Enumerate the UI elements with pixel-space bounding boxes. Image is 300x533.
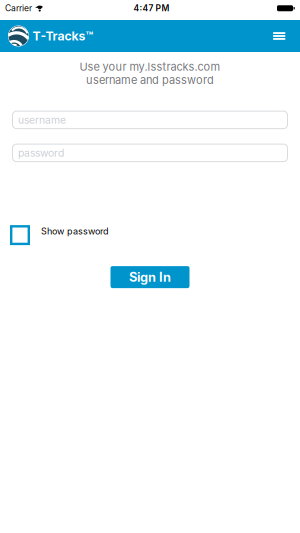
button[interactable]: Show password [10,225,109,245]
button[interactable]: username [12,111,288,129]
staticText: 4:47 PM [133,3,169,13]
staticText: Show password [41,226,109,237]
staticText: T-Tracks™ [32,29,93,43]
button[interactable]: Sign In [110,266,189,288]
staticText: Sign In [129,269,171,285]
staticText: Use your my.lsstracks.com [79,60,220,73]
button[interactable]: password [12,144,288,162]
staticText: username [18,114,66,126]
staticText: password [18,147,64,159]
staticText: username and password [86,73,214,87]
staticText: Carrier [5,3,32,13]
button[interactable]: Menu [268,25,290,47]
